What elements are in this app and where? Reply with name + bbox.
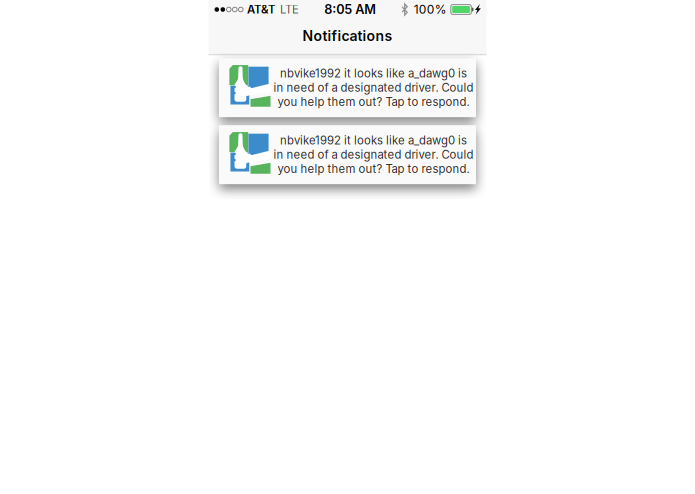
staticText: you help them out? Tap to respond. bbox=[277, 162, 469, 176]
button[interactable]: nbvike1992 it looks like a_dawg0 is bbox=[219, 58, 476, 117]
staticText: nbvike1992 it looks like a_dawg0 is bbox=[280, 67, 467, 80]
staticText: Notifications bbox=[302, 27, 392, 44]
button[interactable]: Notifications bbox=[208, 19, 486, 53]
staticText: 100% bbox=[414, 2, 447, 17]
staticText: nbvike1992 it looks like a_dawg0 is bbox=[280, 134, 467, 147]
staticText: 8:05 AM bbox=[324, 2, 376, 17]
staticText: LTE bbox=[280, 3, 299, 16]
staticText: you help them out? Tap to respond. bbox=[277, 95, 469, 109]
staticText: AT&T bbox=[247, 3, 275, 16]
button[interactable]: nbvike1992 it looks like a_dawg0 is bbox=[219, 125, 476, 184]
staticText: in need of a designated driver. Could bbox=[273, 148, 473, 161]
staticText: in need of a designated driver. Could bbox=[273, 81, 473, 94]
